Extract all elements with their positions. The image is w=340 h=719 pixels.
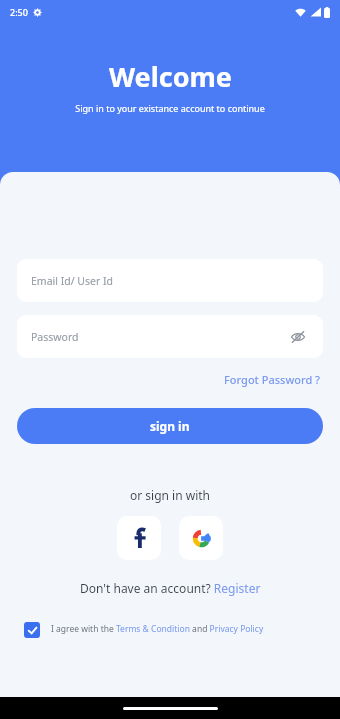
button[interactable]: Sign in with Google	[179, 516, 223, 560]
staticText: or sign in with	[17, 487, 323, 503]
button[interactable]: Don't have an account? Register	[17, 580, 323, 596]
staticText: 2:50	[10, 6, 28, 18]
button[interactable]: Show password	[287, 326, 309, 348]
button[interactable]: Agree to terms	[17, 622, 323, 638]
other: Agree to terms	[24, 622, 40, 638]
button[interactable]: Sign in with Facebook	[117, 516, 161, 560]
staticText: sign in	[150, 418, 190, 434]
button[interactable]: Forgot Password ?	[222, 370, 323, 389]
staticText: Sign in to your existance account to con…	[75, 102, 265, 114]
button[interactable]: Password	[17, 315, 323, 358]
staticText: Forgot Password ?	[224, 372, 321, 387]
staticText: Don't have an account? Register	[80, 580, 261, 596]
staticText: Welcome	[109, 58, 232, 95]
staticText: Email Id/ User Id	[31, 274, 114, 288]
staticText: I agree with the Terms & Condition and P…	[51, 623, 264, 635]
button[interactable]: Email Id/ User Id	[17, 259, 323, 302]
staticText: Password	[31, 330, 79, 344]
button[interactable]: sign in	[17, 408, 323, 444]
